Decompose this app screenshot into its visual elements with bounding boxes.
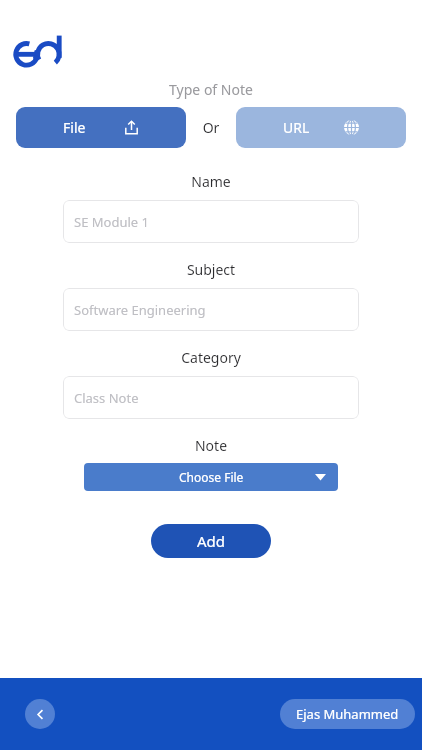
button[interactable]: URL — [236, 107, 406, 148]
button[interactable]: Software Engineering — [63, 288, 359, 331]
button[interactable]: File — [16, 107, 186, 148]
staticText: Add — [197, 531, 226, 551]
staticText: Class Note — [74, 389, 139, 407]
staticText: Software Engineering — [74, 301, 206, 319]
staticText: SE Module 1 — [74, 213, 149, 231]
staticText: URL — [283, 118, 310, 137]
button[interactable]: ed logo — [12, 32, 64, 68]
staticText: Name — [63, 172, 359, 191]
button[interactable]: Ejas Muhammed — [280, 699, 415, 729]
staticText: Note — [63, 436, 359, 455]
staticText: Or — [198, 118, 224, 137]
button[interactable]: Class Note — [63, 376, 359, 419]
button[interactable]: Add — [151, 524, 271, 558]
staticText: Subject — [63, 260, 359, 279]
button[interactable]: Choose File — [84, 463, 338, 491]
staticText: File — [63, 118, 86, 137]
staticText: Choose File — [179, 469, 244, 485]
staticText: Category — [63, 348, 359, 367]
staticText: Ejas Muhammed — [296, 705, 399, 723]
button[interactable]: SE Module 1 — [63, 200, 359, 243]
button[interactable]: Back — [25, 699, 55, 729]
staticText: Type of Note — [0, 80, 422, 99]
